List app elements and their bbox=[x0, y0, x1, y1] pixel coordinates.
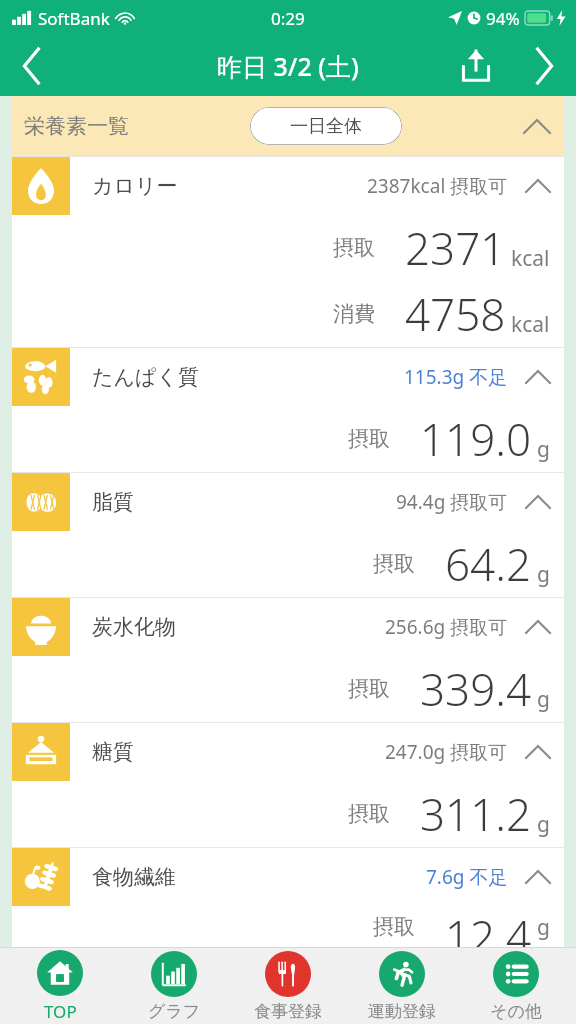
staticText: 食物繊維 bbox=[92, 864, 176, 890]
button[interactable]: TOP bbox=[6, 948, 114, 1024]
staticText: 115.3g 不足 bbox=[404, 364, 508, 390]
staticText: 炭水化物 bbox=[92, 614, 176, 640]
button[interactable]: 前の日 bbox=[0, 36, 64, 96]
staticText: 摂取 bbox=[373, 551, 415, 577]
staticText: g bbox=[537, 560, 550, 589]
staticText: 摂取 bbox=[348, 676, 390, 702]
staticText: g bbox=[537, 810, 550, 839]
button[interactable]: 食物繊維 bbox=[12, 848, 564, 947]
button[interactable]: たんぱく質 bbox=[12, 348, 564, 472]
staticText: 94.4g 摂取可 bbox=[396, 489, 508, 515]
button[interactable]: 糖質 bbox=[12, 723, 564, 847]
button[interactable]: 一日全体 bbox=[250, 107, 402, 145]
staticText: 0:29 bbox=[271, 7, 305, 30]
staticText: 糖質 bbox=[92, 739, 134, 765]
staticText: 247.0g 摂取可 bbox=[385, 739, 508, 765]
staticText: 7.6g 不足 bbox=[426, 864, 508, 890]
staticText: 摂取 bbox=[333, 235, 375, 261]
button[interactable]: 食事登録 bbox=[234, 948, 342, 1024]
staticText: 339.4 bbox=[420, 659, 532, 719]
staticText: g bbox=[537, 913, 550, 942]
staticText: 運動登録 bbox=[368, 1001, 436, 1022]
staticText: 栄養素一覧 bbox=[24, 113, 129, 139]
staticText: TOP bbox=[44, 1000, 77, 1023]
staticText: kcal bbox=[511, 244, 550, 273]
button[interactable]: 栄養素一覧 bbox=[12, 96, 564, 156]
staticText: 食事登録 bbox=[254, 1001, 322, 1022]
button[interactable]: 炭水化物 bbox=[12, 598, 564, 722]
button[interactable]: 次の日 bbox=[512, 36, 576, 96]
staticText: グラフ bbox=[148, 1001, 201, 1022]
staticText: 94% bbox=[486, 7, 520, 30]
button[interactable]: 共有 bbox=[440, 36, 512, 96]
staticText: 一日全体 bbox=[290, 115, 362, 138]
staticText: 4758 bbox=[405, 284, 506, 344]
button[interactable]: カロリー bbox=[12, 157, 564, 347]
staticText: 2371 bbox=[405, 218, 506, 278]
button[interactable]: その他 bbox=[462, 948, 570, 1024]
button[interactable]: グラフ bbox=[120, 948, 228, 1024]
staticText: たんぱく質 bbox=[92, 364, 199, 390]
staticText: 摂取 bbox=[348, 801, 390, 827]
staticText: g bbox=[537, 435, 550, 464]
staticText: 119.0 bbox=[420, 409, 532, 469]
staticText: 摂取 bbox=[348, 426, 390, 452]
staticText: kcal bbox=[511, 310, 550, 339]
staticText: 2387kcal 摂取可 bbox=[367, 173, 508, 199]
staticText: SoftBank bbox=[38, 7, 110, 30]
staticText: 摂取 bbox=[373, 914, 415, 940]
staticText: 12.4 bbox=[445, 906, 532, 947]
button[interactable]: 運動登録 bbox=[348, 948, 456, 1024]
staticText: 64.2 bbox=[445, 534, 532, 594]
staticText: 昨日 3/2 (土) bbox=[217, 49, 359, 83]
button[interactable]: 脂質 bbox=[12, 473, 564, 597]
staticText: g bbox=[537, 685, 550, 714]
staticText: カロリー bbox=[92, 173, 178, 199]
staticText: 256.6g 摂取可 bbox=[385, 614, 508, 640]
staticText: 311.2 bbox=[420, 784, 532, 844]
staticText: その他 bbox=[490, 1001, 542, 1022]
staticText: 脂質 bbox=[92, 489, 134, 515]
staticText: 消費 bbox=[333, 301, 375, 327]
